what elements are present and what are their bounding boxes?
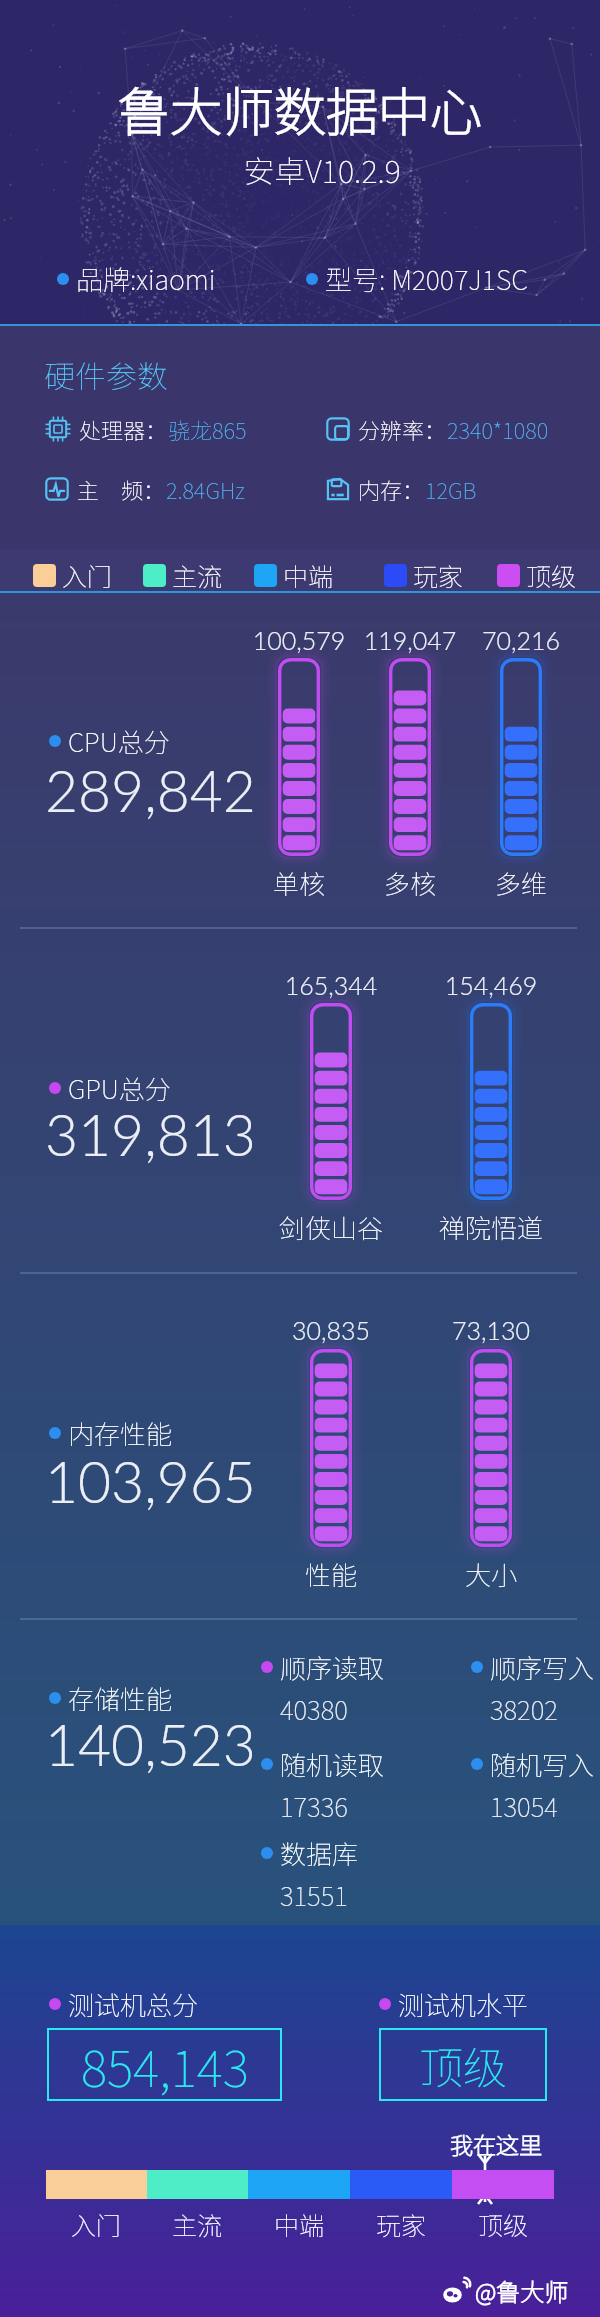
staticText: 鲁大师数据中心 — [0, 71, 600, 146]
button[interactable]: 处理器： — [45, 413, 247, 445]
staticText: 剑侠山谷 — [241, 1208, 421, 1246]
button[interactable]: 玩家 — [384, 557, 464, 593]
staticText: 31551 — [280, 1876, 348, 1914]
staticText: 入门 — [71, 2206, 122, 2242]
staticText: 319,813 — [45, 1100, 256, 1168]
button[interactable]: 内存性能 — [49, 1414, 173, 1452]
staticText: 38202 — [490, 1690, 558, 1728]
staticText: 单核 — [209, 864, 389, 902]
staticText: 100,579 — [209, 625, 389, 655]
staticText: 我在这里 — [450, 2127, 542, 2160]
staticText: 硬件参数 — [44, 352, 168, 397]
staticText: 主 频： — [77, 473, 166, 505]
staticText: 测试机水平 — [398, 1985, 529, 2023]
staticText: 顶级 — [478, 2206, 529, 2242]
staticText: 154,469 — [401, 970, 581, 1000]
button[interactable]: 主流 — [143, 557, 223, 593]
button[interactable]: 顶级 — [497, 557, 577, 593]
staticText: 性能 — [241, 1555, 421, 1593]
staticText: 内存： — [358, 473, 425, 505]
staticText: @鲁大师 — [475, 2273, 569, 2308]
staticText: 大小 — [401, 1555, 581, 1593]
staticText: 入门 — [62, 557, 113, 593]
button[interactable]: 主 频： — [45, 473, 246, 505]
staticText: 顺序读取 — [280, 1648, 385, 1686]
staticText: 内存性能 — [68, 1414, 173, 1452]
staticText: 玩家 — [413, 557, 464, 593]
staticText: 处理器： — [79, 413, 168, 445]
staticText: 165,344 — [241, 970, 421, 1000]
staticText: 140,523 — [45, 1710, 256, 1778]
staticText: 2340*1080 — [447, 413, 549, 445]
staticText: 型号: M2007J1SC — [325, 259, 528, 298]
button[interactable]: 内存： — [326, 473, 477, 505]
staticText: 数据库 — [280, 1834, 359, 1872]
staticText: 随机读取 — [280, 1745, 385, 1783]
staticText: 289,842 — [45, 756, 256, 824]
staticText: 17336 — [280, 1787, 348, 1825]
staticText: 安卓V10.2.9 — [22, 147, 600, 192]
button[interactable]: 中端 — [254, 557, 334, 593]
button[interactable]: 入门 — [33, 557, 113, 593]
staticText: 主流 — [172, 557, 223, 593]
staticText: 多核 — [320, 864, 500, 902]
staticText: 中端 — [283, 557, 334, 593]
staticText: 骁龙865 — [168, 413, 247, 445]
button[interactable]: GPU总分 — [49, 1069, 171, 1107]
staticText: 主流 — [172, 2206, 223, 2242]
staticText: 存储性能 — [68, 1679, 173, 1717]
staticText: 玩家 — [376, 2206, 427, 2242]
button[interactable]: 854,143 — [47, 2028, 282, 2101]
button[interactable]: 存储性能 — [49, 1679, 173, 1717]
button[interactable]: 顶级 — [379, 2028, 547, 2101]
staticText: 854,143 — [81, 2029, 249, 2101]
staticText: 30,835 — [241, 1315, 421, 1345]
staticText: 中端 — [274, 2206, 325, 2242]
staticText: 顶级 — [419, 2033, 507, 2097]
staticText: 测试机总分 — [68, 1985, 199, 2023]
button[interactable]: Weibo — [442, 2273, 569, 2308]
staticText: 禅院悟道 — [401, 1208, 581, 1246]
staticText: 13054 — [490, 1787, 558, 1825]
staticText: 73,130 — [401, 1315, 581, 1345]
button[interactable]: CPU总分 — [49, 722, 170, 760]
staticText: 顺序写入 — [490, 1648, 595, 1686]
staticText: 分辨率： — [358, 413, 447, 445]
staticText: 随机写入 — [490, 1745, 595, 1783]
staticText: 119,047 — [320, 625, 500, 655]
staticText: 12GB — [425, 473, 477, 505]
staticText: 2.84GHz — [166, 473, 246, 505]
staticText: 40380 — [280, 1690, 348, 1728]
staticText: 103,965 — [45, 1447, 256, 1515]
staticText: GPU总分 — [68, 1069, 171, 1107]
staticText: 70,216 — [431, 625, 600, 655]
staticText: 品牌:xiaomi — [76, 259, 216, 298]
button[interactable]: 分辨率： — [326, 413, 549, 445]
staticText: 多维 — [431, 864, 600, 902]
staticText: CPU总分 — [68, 722, 170, 760]
other: Weibo — [442, 2276, 472, 2306]
staticText: 顶级 — [526, 557, 577, 593]
